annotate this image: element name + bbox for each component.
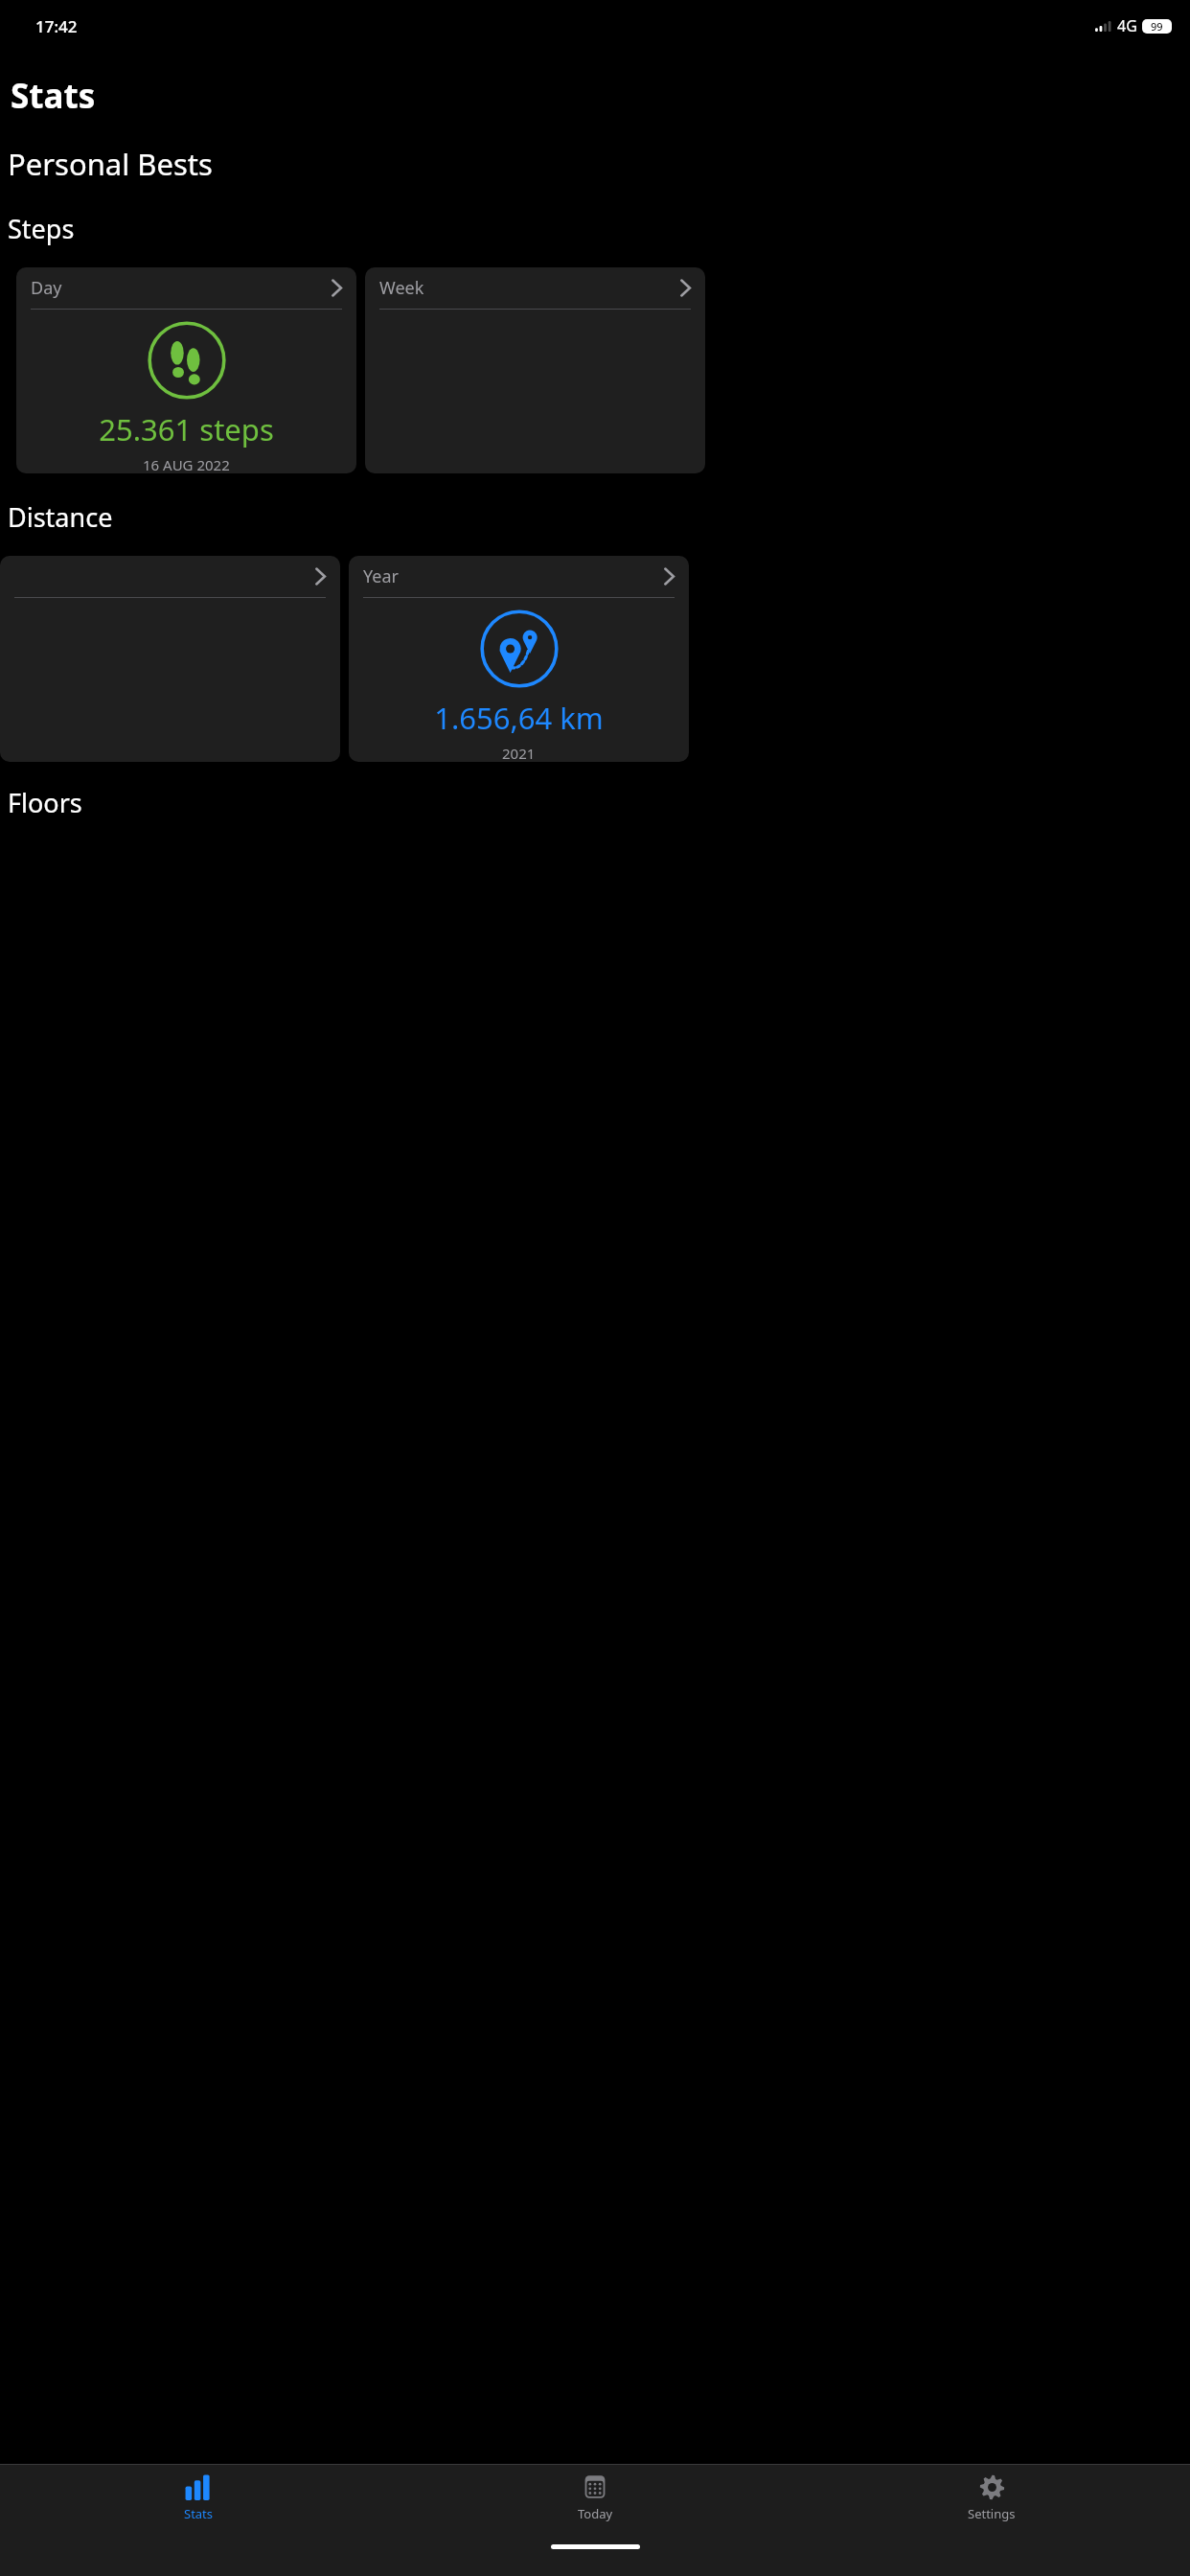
button[interactable]: Day: [16, 267, 356, 473]
staticText: Distance: [8, 499, 113, 535]
staticText: Settings: [968, 2505, 1016, 2522]
button[interactable]: Stats: [0, 2465, 397, 2544]
button[interactable]: Settings: [793, 2465, 1190, 2544]
button[interactable]: [0, 556, 340, 762]
staticText: 25.361 steps: [99, 409, 274, 449]
staticText: 99: [1151, 19, 1163, 34]
staticText: Personal Bests: [8, 144, 213, 184]
staticText: 1.656,64 km: [434, 698, 604, 738]
staticText: Stats: [11, 73, 96, 119]
staticText: Floors: [8, 785, 82, 820]
staticText: Stats: [184, 2505, 214, 2522]
staticText: Year: [363, 564, 399, 588]
staticText: Day: [31, 276, 62, 300]
button[interactable]: Week: [365, 267, 705, 473]
staticText: Steps: [8, 211, 75, 246]
staticText: 16 AUG 2022: [143, 455, 230, 473]
button[interactable]: Year: [349, 556, 689, 762]
staticText: Today: [578, 2505, 613, 2522]
staticText: 2021: [502, 744, 536, 762]
button[interactable]: Today: [397, 2465, 793, 2544]
staticText: 4G: [1117, 15, 1137, 36]
staticText: 17:42: [35, 15, 78, 37]
staticText: Week: [379, 276, 424, 300]
